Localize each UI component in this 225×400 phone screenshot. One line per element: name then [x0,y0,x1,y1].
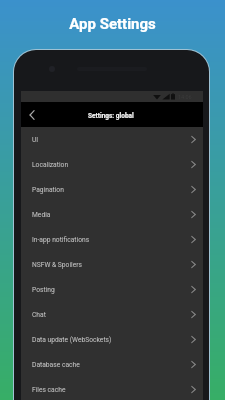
button[interactable]: Files cache [21,377,203,400]
button[interactable]: Media [21,202,203,227]
staticText: Settings: global [88,112,134,120]
staticText: Media [32,211,51,219]
button[interactable]: Posting [21,277,203,302]
button[interactable]: Database cache [21,352,203,377]
staticText: Localization [32,161,69,169]
staticText: Pagination [32,186,64,194]
button[interactable]: Localization [21,152,203,177]
staticText: App Settings [69,15,156,33]
button[interactable]: Chat [21,302,203,327]
staticText: Files cache [32,386,66,394]
button[interactable]: NSFW & Spoilers [21,252,203,277]
button[interactable]: Back [21,102,43,127]
button[interactable]: Pagination [21,177,203,202]
staticText: Data update (WebSockets) [32,336,112,344]
staticText: UI [32,136,39,144]
staticText: Posting [32,286,55,294]
staticText: In-app notifications [32,236,90,244]
button[interactable]: Data update (WebSockets) [21,327,203,352]
staticText: NSFW & Spoilers [32,261,82,269]
staticText: Chat [32,311,46,319]
button[interactable]: In-app notifications [21,227,203,252]
button[interactable]: UI [21,127,203,152]
staticText: Database cache [32,361,80,369]
